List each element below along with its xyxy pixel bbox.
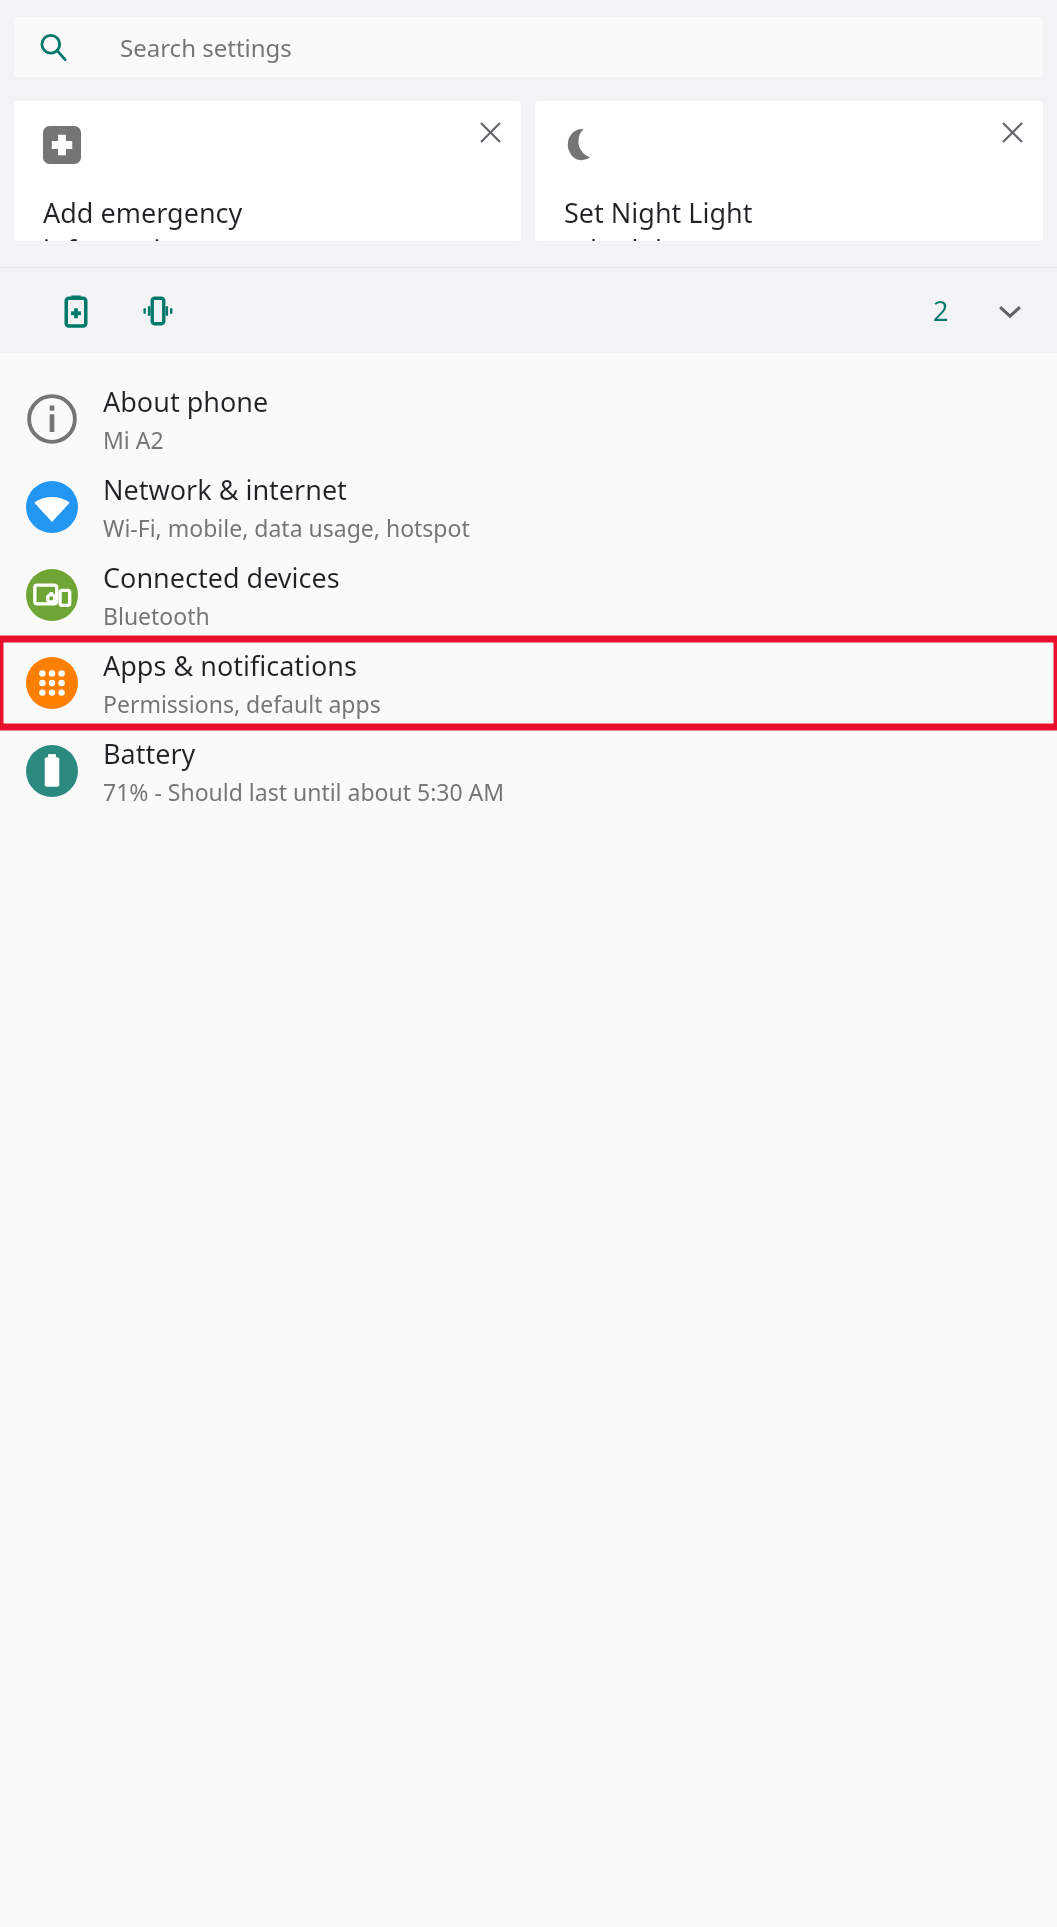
staticText: Wi-Fi, mobile, data usage, hotspot [103, 512, 470, 543]
staticText: Battery [103, 735, 196, 772]
staticText: Bluetooth [103, 600, 210, 631]
button[interactable]: Network & internet [0, 463, 1057, 551]
button[interactable]: Dismiss suggestion [989, 109, 1035, 155]
button[interactable]: Apps & notifications [0, 639, 1057, 727]
staticText: Mi A2 [103, 424, 164, 455]
button[interactable]: Set Night Light [535, 101, 1043, 241]
staticText: 2 [933, 292, 949, 329]
button[interactable]: Battery [0, 727, 1057, 815]
staticText: Apps & notifications [103, 647, 357, 684]
button[interactable]: Connected devices [0, 551, 1057, 639]
button[interactable]: Battery saver [0, 268, 1057, 353]
other: Battery saver [60, 295, 92, 327]
staticText: Add emergency [43, 194, 243, 231]
staticText: 71% - Should last until about 5:30 AM [103, 776, 505, 807]
staticText: information [43, 231, 194, 241]
staticText: Set Night Light [564, 194, 753, 231]
other: Vibrate [142, 295, 174, 327]
button[interactable]: Dismiss suggestion [467, 109, 513, 155]
staticText: Connected devices [103, 559, 340, 596]
staticText: Network & internet [103, 471, 347, 508]
button[interactable]: Search settings [14, 17, 1043, 77]
staticText: Search settings [120, 31, 292, 64]
button[interactable]: Add emergency [14, 101, 521, 241]
other: Expand suggestions [995, 296, 1025, 326]
staticText: Permissions, default apps [103, 688, 381, 719]
staticText: schedule [564, 231, 678, 241]
staticText: About phone [103, 383, 269, 420]
button[interactable]: About phone [0, 375, 1057, 463]
